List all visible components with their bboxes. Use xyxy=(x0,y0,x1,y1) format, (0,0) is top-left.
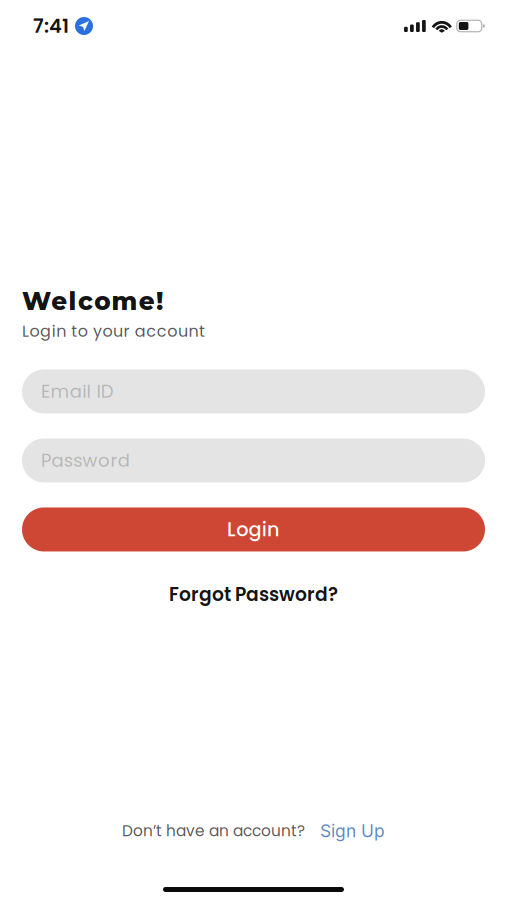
staticText: Sign Up xyxy=(320,820,385,841)
button[interactable]: Don’t have an account? xyxy=(122,818,385,844)
staticText: Email ID xyxy=(41,379,114,404)
staticText: Login to your account xyxy=(22,320,205,342)
button[interactable]: Password xyxy=(22,438,485,482)
button[interactable]: Forgot Password? xyxy=(22,583,485,605)
staticText: Forgot Password? xyxy=(169,581,338,607)
staticText: Password xyxy=(41,448,130,473)
staticText: Welcome! xyxy=(22,286,163,316)
staticText: Login xyxy=(227,516,280,543)
staticText: Don’t have an account? xyxy=(122,820,305,842)
button[interactable]: Login xyxy=(22,507,485,551)
staticText: 7:41 xyxy=(33,12,69,40)
button[interactable]: Email ID xyxy=(22,369,485,413)
